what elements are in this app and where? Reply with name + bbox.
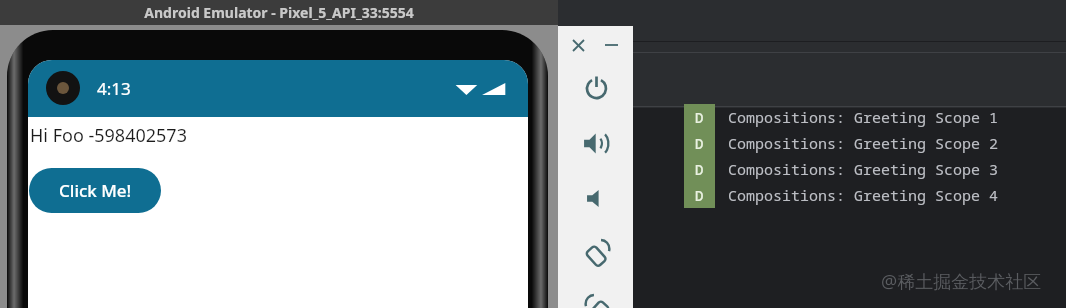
staticText: Compositions: Greeting Scope 4 <box>728 185 999 205</box>
staticText: @稀土掘金技术社区 <box>881 269 1042 294</box>
button[interactable]: Volume down <box>580 182 612 214</box>
staticText: D <box>695 160 704 179</box>
staticText: Hi Foo -598402573 <box>30 123 187 148</box>
staticText: D <box>695 108 704 127</box>
staticText: Compositions: Greeting Scope 2 <box>728 133 999 153</box>
button[interactable]: Close <box>564 31 592 59</box>
staticText: Compositions: Greeting Scope 3 <box>728 159 999 179</box>
button[interactable]: Power <box>580 72 612 104</box>
staticText: D <box>695 186 704 205</box>
button[interactable]: Rotate left <box>580 236 614 270</box>
staticText: Click Me! <box>59 179 132 202</box>
button[interactable]: Volume up <box>580 127 612 159</box>
staticText: 4:13 <box>97 77 131 100</box>
staticText: D <box>695 134 704 153</box>
button[interactable]: Minimize <box>597 31 625 59</box>
button[interactable]: Click Me! <box>29 168 161 213</box>
staticText: Android Emulator - Pixel_5_API_33:5554 <box>144 3 414 22</box>
button[interactable]: Rotate right <box>580 291 614 308</box>
staticText: Compositions: Greeting Scope 1 <box>728 107 999 127</box>
